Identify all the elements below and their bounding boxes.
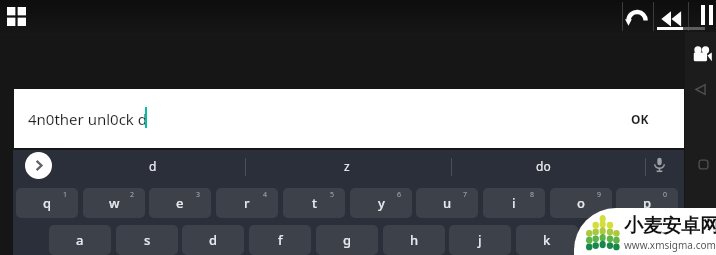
staticText: q: [43, 194, 52, 212]
button[interactable]: f: [249, 225, 311, 255]
staticText: k: [543, 231, 551, 249]
button[interactable]: j: [449, 225, 511, 255]
staticText: f: [278, 231, 283, 249]
button[interactable]: 4n0ther unl0ck d: [14, 89, 684, 148]
staticText: o: [577, 194, 585, 212]
button[interactable]: i: [483, 188, 545, 218]
button[interactable]: Undo: [623, 5, 649, 31]
staticText: 3: [196, 190, 201, 200]
button[interactable]: Voice input: [651, 156, 668, 173]
staticText: p: [643, 194, 652, 212]
staticText: j: [478, 231, 482, 249]
staticText: 4: [263, 190, 268, 200]
button[interactable]: u: [416, 188, 478, 218]
button[interactable]: z: [299, 150, 395, 182]
staticText: u: [443, 194, 452, 212]
staticText: 2: [130, 190, 135, 200]
button[interactable]: h: [383, 225, 445, 255]
button[interactable]: Apps grid: [4, 4, 28, 28]
staticText: 6: [397, 190, 402, 200]
button[interactable]: Recents: [698, 159, 709, 170]
staticText: 小麦安卓网: [624, 214, 716, 238]
button[interactable]: Back: [694, 83, 707, 96]
staticText: 8: [530, 190, 535, 200]
button[interactable]: a: [49, 225, 111, 255]
button[interactable]: d: [105, 150, 201, 182]
staticText: d: [149, 158, 157, 174]
button[interactable]: s: [116, 225, 178, 255]
staticText: h: [410, 231, 419, 249]
button[interactable]: More suggestions: [25, 152, 52, 179]
staticText: y: [378, 194, 385, 212]
button[interactable]: y: [350, 188, 412, 218]
staticText: d: [209, 231, 218, 249]
staticText: z: [344, 158, 350, 174]
staticText: 7: [463, 190, 468, 200]
staticText: w: [109, 194, 120, 212]
staticText: i: [512, 194, 516, 212]
staticText: e: [176, 194, 184, 212]
staticText: 4n0ther unl0ck d: [28, 109, 147, 129]
button[interactable]: OK: [620, 89, 660, 148]
button[interactable]: r: [216, 188, 278, 218]
staticText: 1: [63, 190, 68, 200]
staticText: 0: [663, 190, 668, 200]
button[interactable]: Rewind: [660, 9, 682, 31]
button[interactable]: l: [583, 225, 645, 255]
staticText: 9: [597, 190, 602, 200]
button[interactable]: o: [550, 188, 612, 218]
staticText: g: [343, 231, 352, 249]
button[interactable]: do: [495, 150, 591, 182]
staticText: r: [244, 194, 250, 212]
staticText: l: [612, 231, 616, 249]
button[interactable]: Screen record: [693, 45, 712, 64]
staticText: a: [76, 231, 84, 249]
button[interactable]: k: [516, 225, 578, 255]
staticText: do: [536, 158, 551, 174]
staticText: s: [144, 231, 151, 249]
button[interactable]: d: [182, 225, 244, 255]
button[interactable]: t: [283, 188, 345, 218]
button[interactable]: Pause: [699, 5, 715, 25]
button[interactable]: e: [149, 188, 211, 218]
staticText: 5: [330, 190, 335, 200]
staticText: www.xmsigma.com: [624, 238, 716, 252]
button[interactable]: q: [16, 188, 78, 218]
button[interactable]: g: [316, 225, 378, 255]
staticText: OK: [631, 111, 649, 127]
staticText: t: [312, 194, 317, 212]
button[interactable]: p: [616, 188, 678, 218]
button[interactable]: w: [83, 188, 145, 218]
